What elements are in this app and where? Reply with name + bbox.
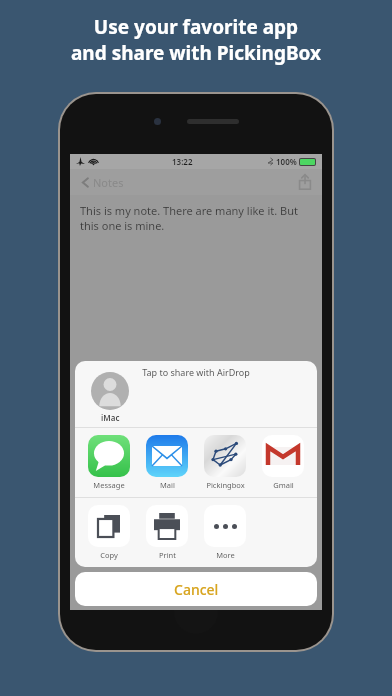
- staticText: 13:22: [172, 156, 193, 167]
- staticText: Gmail: [273, 480, 294, 490]
- staticText: Tap to share with AirDrop: [75, 366, 317, 378]
- staticText: iMac: [101, 412, 120, 423]
- button[interactable]: Print: [143, 505, 191, 560]
- button[interactable]: iMac: [91, 372, 129, 423]
- button[interactable]: Message: [85, 435, 133, 490]
- staticText: More: [216, 550, 235, 560]
- staticText: 100%: [276, 156, 297, 167]
- staticText: Pickingbox: [206, 480, 245, 490]
- staticText: Message: [93, 480, 125, 490]
- staticText: Copy: [100, 550, 118, 560]
- staticText: Notes: [93, 175, 124, 190]
- staticText: Use your favorite app and share with Pic…: [0, 14, 392, 66]
- staticText: This is my note. There are many like it.…: [80, 203, 310, 233]
- button[interactable]: Pickingbox: [201, 435, 249, 490]
- button[interactable]: Copy: [85, 505, 133, 560]
- button[interactable]: More: [201, 505, 249, 560]
- staticText: Cancel: [174, 580, 219, 599]
- staticText: Print: [159, 550, 176, 560]
- button[interactable]: Mail: [143, 435, 191, 490]
- button[interactable]: Notes: [78, 173, 126, 192]
- button[interactable]: Cancel: [75, 572, 317, 606]
- button[interactable]: Share: [296, 173, 314, 191]
- staticText: Mail: [160, 480, 175, 490]
- button[interactable]: Gmail: [259, 435, 307, 490]
